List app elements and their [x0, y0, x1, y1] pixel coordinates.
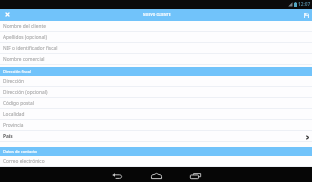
button[interactable]: Home: [147, 168, 165, 182]
staticText: NIF o identificador fiscal: [3, 45, 58, 52]
button[interactable]: Provincia: [0, 120, 312, 131]
button[interactable]: Close: [2, 11, 10, 19]
button[interactable]: Dirección (opcional): [0, 87, 312, 98]
button[interactable]: Dirección fiscal: [0, 67, 312, 76]
button[interactable]: Recents: [186, 168, 204, 182]
button[interactable]: Localidad: [0, 109, 312, 120]
staticText: Localidad: [3, 111, 25, 118]
staticText: Nombre comercial: [3, 56, 45, 63]
staticText: País: [3, 133, 13, 140]
staticText: Correo electrónico: [3, 158, 45, 165]
staticText: Datos de contacto: [3, 149, 38, 154]
staticText: Dirección (opcional): [3, 89, 48, 96]
staticText: Provincia: [3, 122, 24, 129]
button[interactable]: País: [0, 131, 312, 142]
staticText: Dirección fiscal: [3, 69, 32, 74]
button[interactable]: Save: [302, 11, 310, 19]
button[interactable]: Datos de contacto: [0, 147, 312, 156]
staticText: Apellidos (opcional): [3, 34, 47, 41]
button[interactable]: Back: [108, 168, 126, 182]
staticText: Código postal: [3, 100, 35, 107]
staticText: Nombre del cliente: [3, 23, 46, 30]
button[interactable]: Dirección: [0, 76, 312, 87]
staticText: 12:07: [298, 1, 311, 8]
button[interactable]: Nombre comercial: [0, 54, 312, 65]
button[interactable]: Apellidos (opcional): [0, 32, 312, 43]
button[interactable]: Código postal: [0, 98, 312, 109]
button[interactable]: NIF o identificador fiscal: [0, 43, 312, 54]
button[interactable]: Correo electrónico: [0, 156, 312, 167]
button[interactable]: Nombre del cliente: [0, 21, 312, 32]
staticText: NUEVO CLIENTE: [143, 13, 171, 17]
staticText: Dirección: [3, 78, 25, 85]
